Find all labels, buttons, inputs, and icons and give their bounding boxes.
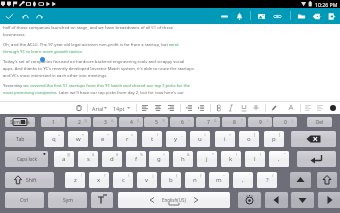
button[interactable]: r: [117, 131, 137, 147]
button[interactable]: h: [173, 151, 193, 167]
button[interactable]: Increase indent: [195, 102, 207, 114]
button[interactable]: x: [89, 172, 109, 188]
button[interactable]: o: [239, 131, 259, 147]
button[interactable]: g: [149, 151, 169, 167]
button[interactable]: Clipboard: [73, 102, 85, 114]
button[interactable]: key: [318, 192, 340, 208]
staticText: 7: [207, 119, 210, 126]
button[interactable]: 0: [273, 117, 297, 127]
staticText: ?: [104, 173, 106, 178]
staticText: >: [229, 132, 232, 137]
staticText: 5: [155, 119, 158, 126]
button[interactable]: key: [291, 192, 314, 208]
button[interactable]: Arial: [92, 105, 104, 112]
button[interactable]: Bulleted list: [302, 102, 314, 114]
button[interactable]: Align center: [152, 102, 164, 114]
button[interactable]: Undo: [18, 9, 32, 23]
button[interactable]: Export: [324, 9, 338, 23]
staticText: a: [62, 155, 66, 163]
button[interactable]: Caps lock: [5, 151, 48, 167]
button[interactable]: Decrease indent: [183, 102, 195, 114]
staticText: ,: [278, 155, 280, 163]
staticText: ,: [242, 176, 244, 184]
button[interactable]: Redo: [32, 9, 46, 23]
button[interactable]: Align left: [139, 102, 151, 114]
button[interactable]: Label: [309, 9, 323, 23]
button[interactable]: t: [142, 131, 162, 147]
button[interactable]: z: [65, 172, 85, 188]
button[interactable]: 8: [222, 117, 246, 127]
staticText: !: [61, 118, 62, 123]
button[interactable]: d: [102, 151, 122, 167]
button[interactable]: y: [166, 131, 186, 147]
button[interactable]: w: [68, 131, 88, 147]
staticText: Symbols: [10, 119, 30, 126]
button[interactable]: k: [221, 151, 241, 167]
staticText: ): [292, 118, 294, 123]
button[interactable]: j: [197, 151, 217, 167]
button[interactable]: Numbered list: [314, 102, 326, 114]
button[interactable]: Tab: [5, 131, 36, 147]
button[interactable]: f: [126, 151, 146, 167]
button[interactable]: ,: [269, 151, 289, 167]
button[interactable]: key: [91, 192, 113, 208]
button[interactable]: Underline: [238, 102, 250, 114]
button[interactable]: 4: [119, 117, 143, 127]
button[interactable]: p: [264, 131, 284, 147]
button[interactable]: c: [113, 172, 133, 188]
button[interactable]: Shift: [5, 172, 54, 188]
button[interactable]: 1: [41, 117, 65, 127]
staticText: w: [76, 135, 81, 143]
button[interactable]: Link: [270, 9, 284, 23]
button[interactable]: 9: [248, 117, 272, 127]
button[interactable]: n: [185, 172, 205, 188]
button[interactable]: Color: [330, 105, 336, 111]
button[interactable]: key: [291, 131, 336, 147]
button[interactable]: q: [44, 131, 64, 147]
button[interactable]: English(US): [118, 192, 230, 208]
button[interactable]: Text color: [285, 102, 297, 114]
button[interactable]: key: [238, 192, 261, 208]
button[interactable]: i: [215, 131, 235, 147]
button[interactable]: 3: [93, 117, 117, 127]
button[interactable]: Strikethrough: [250, 102, 262, 114]
button[interactable]: Folder: [294, 9, 308, 23]
button[interactable]: Sym: [48, 192, 87, 208]
button[interactable]: key: [317, 172, 337, 188]
button[interactable]: Bold: [213, 102, 225, 114]
staticText: Caps lock: [17, 156, 37, 162]
button[interactable]: Align right: [165, 102, 177, 114]
button[interactable]: Highlight: [268, 102, 280, 114]
button[interactable]: Table: [217, 9, 231, 23]
button[interactable]: ?: [257, 172, 277, 188]
staticText: #: [92, 152, 95, 157]
button[interactable]: e: [93, 131, 113, 147]
button[interactable]: Done: [2, 9, 16, 23]
button[interactable]: key: [297, 151, 336, 167]
staticText: %: [140, 152, 143, 157]
button[interactable]: a: [54, 151, 74, 167]
button[interactable]: 2: [67, 117, 91, 127]
button[interactable]: u: [190, 131, 210, 147]
button[interactable]: key: [265, 192, 288, 208]
button[interactable]: b: [161, 172, 181, 188]
staticText: &: [214, 118, 217, 123]
staticText: Yesterday we covered the first 51 startu…: [3, 83, 195, 96]
button[interactable]: Italic: [225, 102, 237, 114]
button[interactable]: Reminder: [232, 9, 246, 23]
button[interactable]: 7: [196, 117, 220, 127]
button[interactable]: l: [245, 151, 265, 167]
button[interactable]: s: [78, 151, 98, 167]
button[interactable]: Symbols: [5, 117, 35, 127]
button[interactable]: key: [290, 172, 311, 188]
button[interactable]: 14pt: [113, 105, 125, 112]
button[interactable]: 6: [170, 117, 194, 127]
button[interactable]: m: [209, 172, 229, 188]
button[interactable]: ,: [233, 172, 253, 188]
button[interactable]: v: [137, 172, 157, 188]
button[interactable]: Image: [254, 9, 268, 23]
button[interactable]: Del: [307, 117, 332, 127]
staticText: 8: [233, 119, 236, 126]
button[interactable]: 5: [144, 117, 168, 127]
button[interactable]: Ctrl: [5, 192, 44, 208]
